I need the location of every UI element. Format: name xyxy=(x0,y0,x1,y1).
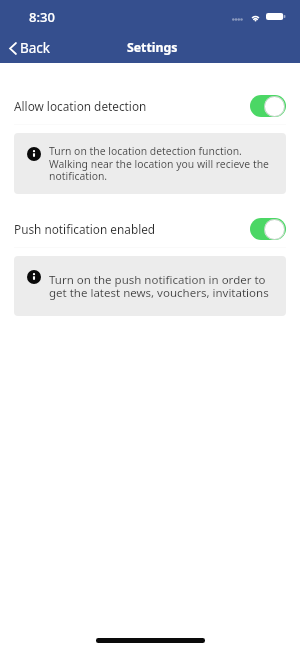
staticText: Settings xyxy=(127,39,178,56)
button[interactable]: Back xyxy=(5,36,55,60)
button[interactable]: Allow location detection xyxy=(0,88,300,124)
staticText: Allow location detection xyxy=(14,98,147,114)
staticText: 8:30 xyxy=(29,8,55,26)
staticText: Turn on the push notification in order t… xyxy=(49,272,286,300)
button[interactable]: Push notification enabled xyxy=(0,211,300,247)
staticText: Back xyxy=(20,39,51,57)
staticText: Push notification enabled xyxy=(14,221,156,237)
button[interactable]: Toggle switch xyxy=(250,95,286,117)
button[interactable]: Toggle switch xyxy=(250,218,286,240)
staticText: Turn on the location detection function.… xyxy=(49,144,286,183)
